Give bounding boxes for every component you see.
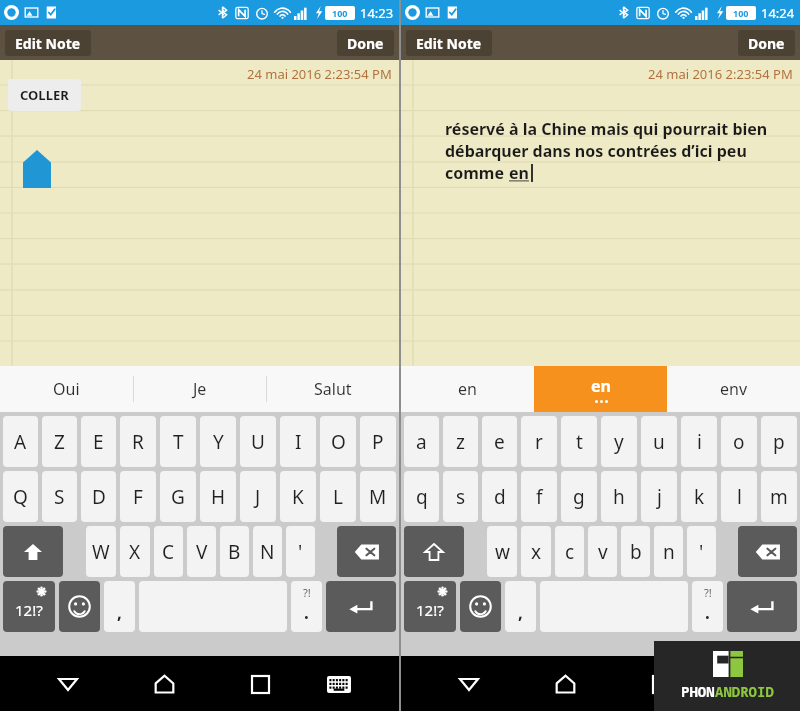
button[interactable]: c bbox=[555, 526, 584, 577]
button[interactable]: Symbols bbox=[404, 581, 456, 632]
button[interactable]: ' bbox=[687, 526, 716, 577]
button[interactable]: Back bbox=[45, 661, 91, 707]
button[interactable]: K bbox=[280, 471, 316, 522]
button[interactable]: U bbox=[240, 416, 276, 467]
button[interactable]: en bbox=[534, 366, 667, 412]
button[interactable]: Z bbox=[42, 416, 77, 467]
button[interactable]: Recents bbox=[638, 661, 684, 707]
button[interactable]: r bbox=[521, 416, 557, 467]
button[interactable]: ' bbox=[286, 526, 315, 577]
button[interactable]: V bbox=[187, 526, 216, 577]
button[interactable]: env bbox=[667, 366, 800, 412]
button[interactable]: , bbox=[104, 581, 135, 632]
button[interactable]: Shift bbox=[404, 526, 464, 577]
button[interactable]: Home bbox=[141, 661, 187, 707]
button[interactable]: R bbox=[120, 416, 156, 467]
button[interactable]: e bbox=[482, 416, 517, 467]
button[interactable]: Home bbox=[542, 661, 588, 707]
button[interactable]: Salut bbox=[267, 366, 399, 412]
button[interactable]: Edit Note bbox=[406, 30, 492, 56]
button[interactable]: Oui bbox=[0, 366, 133, 412]
button[interactable]: P bbox=[360, 416, 396, 467]
button[interactable]: Done bbox=[738, 30, 795, 56]
button[interactable]: Emoji bbox=[59, 581, 100, 632]
button[interactable]: u bbox=[641, 416, 677, 467]
button[interactable]: M bbox=[360, 471, 396, 522]
button[interactable]: Q bbox=[3, 471, 38, 522]
button[interactable]: x bbox=[521, 526, 551, 577]
button[interactable]: t bbox=[561, 416, 597, 467]
button[interactable]: Done bbox=[337, 30, 394, 56]
button[interactable]: Je bbox=[134, 366, 266, 412]
staticText: w bbox=[495, 539, 510, 565]
button[interactable]: Emoji bbox=[460, 581, 501, 632]
staticText: Edit Note bbox=[15, 34, 81, 53]
button[interactable]: Enter bbox=[727, 581, 797, 632]
button[interactable]: Edit Note bbox=[5, 30, 91, 56]
button[interactable]: l bbox=[721, 471, 757, 522]
button[interactable]: B bbox=[220, 526, 249, 577]
button[interactable]: s bbox=[443, 471, 478, 522]
button[interactable]: w bbox=[487, 526, 517, 577]
button[interactable]: ?! bbox=[291, 581, 322, 632]
button[interactable]: Shift bbox=[3, 526, 63, 577]
button[interactable]: C bbox=[154, 526, 183, 577]
button[interactable]: F bbox=[120, 471, 156, 522]
button[interactable]: T bbox=[160, 416, 196, 467]
button[interactable]: Enter bbox=[326, 581, 396, 632]
button[interactable]: A bbox=[3, 416, 38, 467]
button[interactable]: I bbox=[280, 416, 316, 467]
button[interactable]: Back bbox=[446, 661, 492, 707]
button[interactable]: m bbox=[761, 471, 797, 522]
button[interactable]: b bbox=[621, 526, 650, 577]
button[interactable]: Backspace bbox=[337, 526, 396, 577]
button[interactable]: n bbox=[654, 526, 683, 577]
button[interactable]: d bbox=[482, 471, 517, 522]
button[interactable]: COLLER bbox=[8, 79, 81, 111]
button[interactable]: j bbox=[641, 471, 677, 522]
staticText: d bbox=[494, 484, 506, 510]
button[interactable]: J bbox=[240, 471, 276, 522]
staticText: h bbox=[613, 484, 625, 510]
button[interactable]: h bbox=[601, 471, 637, 522]
button[interactable]: en bbox=[401, 366, 534, 412]
staticText: R bbox=[132, 429, 144, 455]
button[interactable]: O bbox=[320, 416, 356, 467]
button[interactable]: Hide keyboard bbox=[316, 661, 362, 707]
button[interactable]: H bbox=[200, 471, 236, 522]
button[interactable]: L bbox=[320, 471, 356, 522]
staticText: N bbox=[260, 539, 275, 565]
staticText: 14:23 bbox=[360, 4, 394, 22]
button[interactable]: S bbox=[42, 471, 77, 522]
button[interactable]: , bbox=[505, 581, 536, 632]
button[interactable]: Y bbox=[200, 416, 236, 467]
staticText: ?! bbox=[704, 585, 712, 600]
button[interactable]: z bbox=[443, 416, 478, 467]
staticText: n bbox=[663, 539, 675, 565]
button[interactable]: q bbox=[404, 471, 439, 522]
button[interactable]: Hide keyboard bbox=[717, 661, 763, 707]
button[interactable]: W bbox=[86, 526, 116, 577]
button[interactable]: Backspace bbox=[738, 526, 797, 577]
button[interactable]: f bbox=[521, 471, 557, 522]
button[interactable]: E bbox=[81, 416, 116, 467]
button[interactable]: y bbox=[601, 416, 637, 467]
button[interactable]: Symbols bbox=[3, 581, 55, 632]
button[interactable]: D bbox=[81, 471, 116, 522]
button[interactable]: Recents bbox=[237, 661, 283, 707]
button[interactable]: N bbox=[253, 526, 282, 577]
button[interactable]: g bbox=[561, 471, 597, 522]
button[interactable]: i bbox=[681, 416, 717, 467]
button[interactable]: p bbox=[761, 416, 797, 467]
button[interactable]: k bbox=[681, 471, 717, 522]
button[interactable]: ?! bbox=[692, 581, 723, 632]
button[interactable]: G bbox=[160, 471, 196, 522]
staticText: réservé à la Chine mais qui pourrait bie… bbox=[445, 118, 768, 140]
button[interactable]: X bbox=[120, 526, 150, 577]
button[interactable]: o bbox=[721, 416, 757, 467]
button[interactable]: v bbox=[588, 526, 617, 577]
staticText: débarquer dans nos contrées d’ici peu bbox=[445, 140, 747, 162]
button[interactable]: a bbox=[404, 416, 439, 467]
